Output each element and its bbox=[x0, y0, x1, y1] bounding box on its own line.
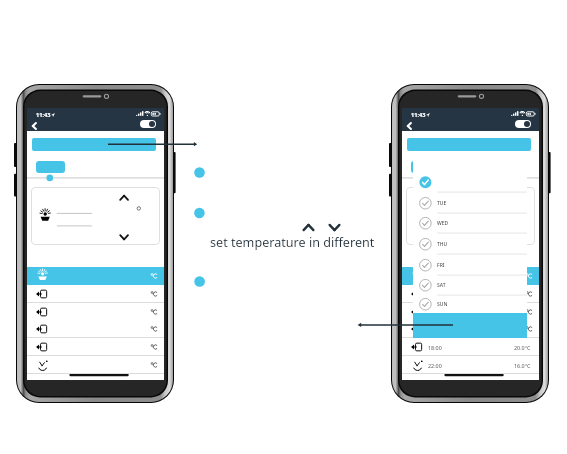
button[interactable]: Back bbox=[404, 120, 415, 131]
button[interactable]: FRI bbox=[413, 255, 527, 275]
button[interactable] bbox=[27, 285, 164, 303]
button[interactable]: 22:00 bbox=[402, 356, 539, 374]
button[interactable]: Power toggle bbox=[140, 120, 156, 128]
button[interactable] bbox=[402, 267, 539, 285]
button[interactable] bbox=[27, 303, 164, 321]
staticText: SUN bbox=[437, 301, 448, 308]
staticText: set temperature in different bbox=[210, 234, 375, 251]
button[interactable]: SAT bbox=[413, 275, 527, 295]
button[interactable] bbox=[32, 138, 156, 151]
staticText: 11:43 bbox=[36, 111, 51, 119]
button[interactable] bbox=[406, 187, 535, 245]
button[interactable] bbox=[27, 320, 164, 338]
button[interactable] bbox=[402, 303, 539, 321]
staticText: SAT bbox=[437, 282, 446, 289]
button[interactable] bbox=[36, 161, 65, 173]
staticText: WED bbox=[437, 220, 449, 227]
button[interactable]: TUE bbox=[413, 193, 527, 213]
button[interactable] bbox=[27, 267, 164, 285]
staticText: 18:00 bbox=[428, 344, 442, 351]
staticText: 20.0°C bbox=[514, 344, 531, 351]
staticText: TUE bbox=[437, 200, 447, 207]
button[interactable]: SUN bbox=[413, 294, 527, 314]
button[interactable]: Power toggle bbox=[515, 120, 531, 128]
staticText: FRI bbox=[437, 262, 445, 269]
staticText: 11:43 bbox=[411, 111, 426, 119]
button[interactable] bbox=[413, 172, 527, 192]
button[interactable] bbox=[27, 338, 164, 356]
button[interactable] bbox=[402, 320, 539, 338]
button[interactable] bbox=[413, 313, 527, 338]
staticText: 22:00 bbox=[428, 362, 442, 369]
button[interactable] bbox=[407, 138, 531, 151]
button[interactable] bbox=[402, 285, 539, 303]
staticText: THU bbox=[437, 241, 448, 248]
button[interactable] bbox=[31, 187, 160, 245]
button[interactable]: WED bbox=[413, 213, 527, 233]
button[interactable] bbox=[411, 161, 440, 173]
button[interactable]: Back bbox=[29, 120, 40, 131]
staticText: 16.0°C bbox=[514, 362, 531, 369]
button[interactable]: 18:00 bbox=[402, 338, 539, 356]
button[interactable]: THU bbox=[413, 234, 527, 254]
button[interactable] bbox=[27, 356, 164, 374]
